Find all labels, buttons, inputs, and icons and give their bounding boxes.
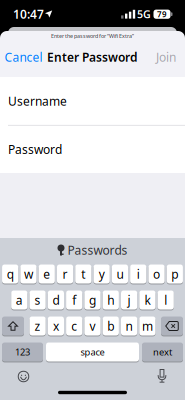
staticText: Enter Password bbox=[47, 49, 138, 65]
button[interactable]: Next bbox=[142, 342, 183, 361]
staticText: Password bbox=[8, 141, 62, 157]
button[interactable]: g bbox=[84, 290, 101, 309]
staticText: Passwords bbox=[67, 242, 127, 258]
staticText: g bbox=[89, 292, 96, 308]
staticText: p bbox=[171, 266, 178, 282]
staticText: d bbox=[52, 292, 59, 308]
button[interactable]: i bbox=[130, 264, 146, 283]
button[interactable]: Cancel bbox=[4, 49, 42, 65]
staticText: m bbox=[142, 318, 153, 334]
button[interactable]: Emoji bbox=[16, 369, 30, 383]
button[interactable]: n bbox=[121, 316, 137, 335]
staticText: u bbox=[116, 266, 123, 282]
button[interactable]: f bbox=[66, 290, 82, 309]
staticText: Cancel bbox=[4, 49, 42, 65]
button[interactable]: o bbox=[148, 264, 165, 283]
button[interactable]: y bbox=[94, 264, 110, 283]
staticText: v bbox=[89, 318, 95, 334]
staticText: w bbox=[24, 266, 33, 282]
button[interactable]: space bbox=[46, 342, 139, 361]
button[interactable]: Username bbox=[0, 77, 185, 125]
staticText: b bbox=[107, 318, 114, 334]
button[interactable]: h bbox=[103, 290, 119, 309]
staticText: 5G bbox=[137, 7, 151, 21]
button[interactable]: m bbox=[139, 316, 155, 335]
staticText: e bbox=[43, 266, 50, 282]
button[interactable]: r bbox=[57, 264, 73, 283]
staticText: 10:47 bbox=[13, 6, 44, 22]
button[interactable]: a bbox=[11, 290, 27, 309]
staticText: Join bbox=[156, 49, 176, 65]
staticText: a bbox=[16, 292, 23, 308]
button[interactable]: q bbox=[2, 264, 18, 283]
button[interactable]: c bbox=[66, 316, 82, 335]
button[interactable]: t bbox=[75, 264, 91, 283]
staticText: f bbox=[72, 292, 76, 308]
button[interactable]: e bbox=[39, 264, 55, 283]
button[interactable]: Dictation bbox=[157, 369, 166, 383]
staticText: 79 bbox=[157, 9, 167, 19]
staticText: next bbox=[153, 346, 172, 358]
button[interactable]: z bbox=[29, 316, 46, 335]
staticText: i bbox=[137, 266, 140, 282]
button[interactable]: d bbox=[48, 290, 64, 309]
button[interactable]: w bbox=[20, 264, 37, 283]
staticText: q bbox=[7, 266, 14, 282]
button[interactable]: v bbox=[84, 316, 101, 335]
staticText: s bbox=[35, 292, 41, 308]
staticText: r bbox=[63, 266, 68, 282]
staticText: z bbox=[35, 318, 41, 334]
staticText: o bbox=[153, 266, 160, 282]
button[interactable]: Delete bbox=[161, 316, 183, 335]
staticText: Enter the password for “Wifi Extra” bbox=[51, 32, 134, 40]
staticText: j bbox=[128, 292, 131, 308]
button[interactable]: x bbox=[48, 316, 64, 335]
staticText: space bbox=[80, 346, 104, 358]
button[interactable]: Shift bbox=[2, 316, 24, 335]
staticText: t bbox=[81, 266, 85, 282]
button[interactable]: Password bbox=[0, 126, 185, 173]
button[interactable]: j bbox=[121, 290, 137, 309]
staticText: x bbox=[53, 318, 59, 334]
staticText: h bbox=[107, 292, 114, 308]
staticText: c bbox=[71, 318, 77, 334]
button[interactable]: Numbers bbox=[2, 342, 43, 361]
button[interactable]: p bbox=[167, 264, 183, 283]
button[interactable]: b bbox=[103, 316, 119, 335]
staticText: Username bbox=[8, 93, 67, 109]
button[interactable]: s bbox=[29, 290, 46, 309]
button[interactable]: Join bbox=[156, 49, 176, 65]
staticText: l bbox=[164, 292, 167, 308]
staticText: k bbox=[144, 292, 150, 308]
staticText: y bbox=[99, 266, 105, 282]
button[interactable]: k bbox=[139, 290, 155, 309]
button[interactable]: Passwords bbox=[57, 242, 127, 258]
staticText: 123 bbox=[15, 346, 30, 358]
staticText: n bbox=[126, 318, 133, 334]
button[interactable]: l bbox=[158, 290, 174, 309]
button[interactable]: u bbox=[112, 264, 128, 283]
